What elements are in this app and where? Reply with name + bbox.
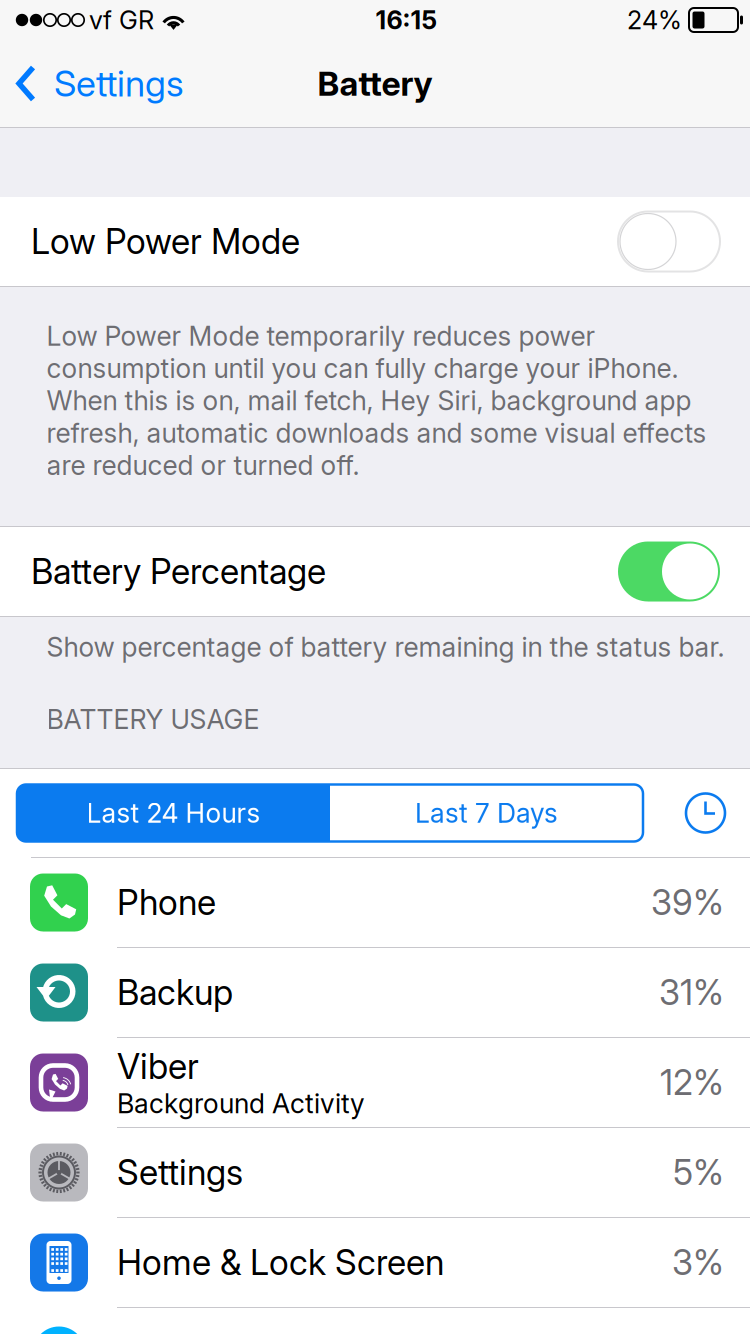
staticText: Background Activity <box>117 1087 365 1120</box>
staticText: Phone <box>117 881 216 923</box>
button[interactable]: Backup <box>0 948 750 1037</box>
staticText: Battery Percentage <box>31 550 326 592</box>
staticText: Low Power Mode <box>31 220 300 262</box>
staticText: Settings <box>117 1151 243 1193</box>
staticText: 3% <box>672 1241 724 1283</box>
staticText: 39% <box>651 881 724 923</box>
button[interactable]: Home & Lock Screen <box>0 1218 750 1307</box>
staticText: 16:15 <box>375 5 437 35</box>
button[interactable]: Settings <box>0 40 184 127</box>
staticText: 12% <box>660 1061 724 1103</box>
staticText: Backup <box>117 971 233 1013</box>
staticText: 31% <box>659 971 724 1013</box>
button[interactable]: Last 24 Hours <box>17 784 330 841</box>
staticText: 24% <box>627 5 682 35</box>
button[interactable]: Phone <box>0 858 750 947</box>
button[interactable]: Last 7 Days <box>330 784 643 841</box>
staticText: BATTERY USAGE <box>46 703 259 736</box>
staticText: Battery <box>317 63 432 104</box>
staticText: vf GR <box>89 5 154 35</box>
button[interactable]: Low Power Mode <box>0 197 750 286</box>
staticText: Show percentage of battery remaining in … <box>46 631 724 663</box>
staticText: Last 24 Hours <box>86 797 260 829</box>
staticText: Low Power Mode temporarily reduces power… <box>46 320 706 481</box>
staticText: Last 7 Days <box>415 797 558 829</box>
staticText: Viber <box>117 1045 199 1087</box>
button[interactable]: Viber <box>0 1038 750 1127</box>
button[interactable]: Show usage by time <box>685 792 726 833</box>
button[interactable]: Settings <box>0 1128 750 1217</box>
button[interactable]: Battery Percentage <box>0 527 750 616</box>
staticText: Home & Lock Screen <box>117 1241 444 1283</box>
button[interactable]: Messenger <box>0 1308 750 1334</box>
staticText: 5% <box>673 1151 724 1193</box>
staticText: Settings <box>54 62 184 105</box>
